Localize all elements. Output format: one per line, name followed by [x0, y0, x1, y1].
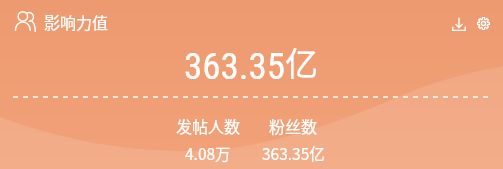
- button[interactable]: People: [15, 11, 35, 31]
- button[interactable]: 粉丝数: [253, 114, 333, 164]
- button[interactable]: Download: [452, 17, 466, 31]
- staticText: 363.35亿: [262, 142, 325, 164]
- button[interactable]: Settings: [477, 17, 490, 30]
- staticText: 影响力值: [44, 10, 109, 33]
- staticText: 4.08万: [185, 142, 231, 164]
- staticText: 发帖人数: [176, 114, 241, 137]
- staticText: 粉丝数: [269, 114, 318, 137]
- staticText: 363.35: [184, 45, 286, 88]
- staticText: 亿: [285, 38, 318, 86]
- button[interactable]: 发帖人数: [168, 114, 248, 164]
